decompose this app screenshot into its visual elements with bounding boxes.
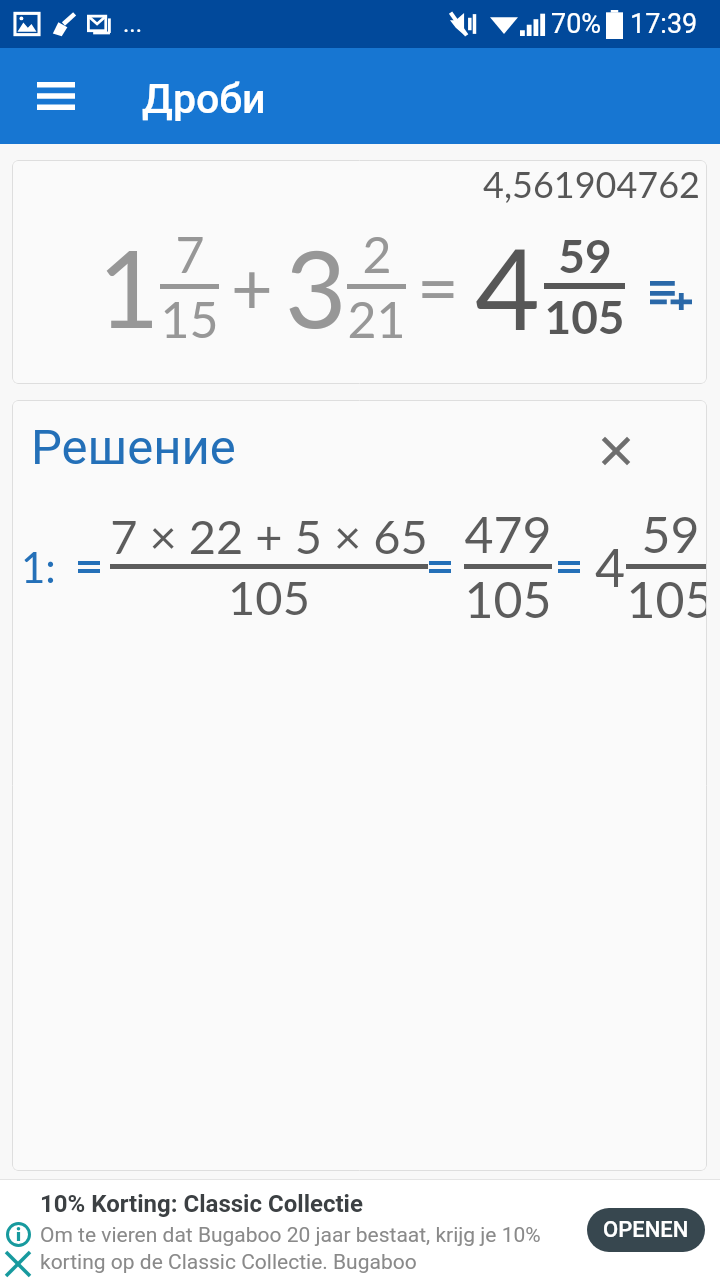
staticText: 59 bbox=[558, 228, 612, 283]
staticText: 479 bbox=[464, 504, 552, 564]
staticText: 105 bbox=[228, 569, 310, 625]
staticText: 2 bbox=[362, 224, 392, 284]
staticText: 7 bbox=[175, 224, 205, 284]
staticText: 105 bbox=[464, 569, 552, 629]
staticText: 21 bbox=[347, 289, 406, 349]
staticText: 4 bbox=[595, 536, 626, 598]
staticText: 59 bbox=[641, 504, 700, 564]
staticText: Решение bbox=[31, 419, 236, 476]
button[interactable]: Close ad bbox=[0, 1246, 36, 1280]
button[interactable]: Add to list bbox=[649, 264, 693, 308]
staticText: Дроби bbox=[142, 75, 266, 123]
staticText: 17:39 bbox=[630, 8, 698, 40]
staticText: 3 bbox=[285, 223, 347, 350]
staticText: 1 bbox=[98, 223, 160, 350]
staticText: 105 bbox=[626, 569, 707, 629]
button[interactable]: Ad info bbox=[0, 1216, 36, 1252]
staticText: 15 bbox=[160, 289, 219, 349]
staticText: = bbox=[417, 243, 459, 329]
staticText: 105 bbox=[544, 289, 625, 344]
staticText: 10% Korting: Classic Collectie bbox=[40, 1190, 363, 1218]
staticText: ... bbox=[123, 10, 142, 38]
button[interactable]: Open navigation drawer bbox=[27, 67, 85, 125]
staticText: 1: bbox=[21, 542, 56, 592]
staticText: Om te vieren dat Bugaboo 20 jaar bestaat… bbox=[40, 1223, 541, 1248]
staticText: korting op de Classic Collectie. Bugaboo bbox=[40, 1250, 417, 1275]
staticText: 7 × 22 + 5 × 65 bbox=[110, 508, 428, 564]
staticText: + bbox=[231, 243, 273, 329]
button[interactable]: Close bbox=[590, 425, 642, 477]
staticText: 4,561904762 bbox=[483, 162, 700, 205]
staticText: OPENEN bbox=[603, 1217, 689, 1243]
button[interactable]: OPENEN bbox=[587, 1208, 705, 1252]
staticText: 4 bbox=[475, 219, 540, 353]
staticText: 70% bbox=[551, 8, 602, 40]
